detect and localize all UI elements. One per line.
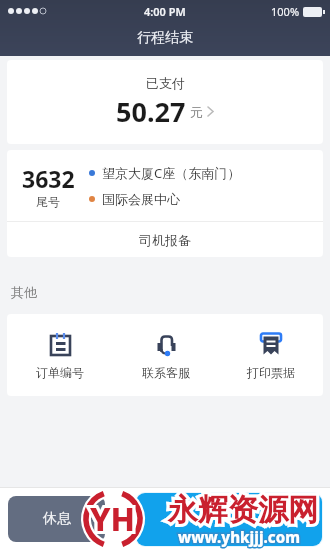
staticText: 其他 xyxy=(11,284,37,300)
staticText: 100% xyxy=(271,4,300,19)
staticText: 休息 xyxy=(43,510,71,528)
staticText: YH xyxy=(90,497,136,541)
button[interactable]: 已支付 xyxy=(7,60,323,144)
staticText: 联系客服 xyxy=(142,365,190,380)
button[interactable]: 休息 xyxy=(8,496,105,542)
staticText: 永辉资源网 xyxy=(168,491,318,529)
staticText: 国际会展中心 xyxy=(102,191,180,207)
staticText: 4:00 PM xyxy=(144,4,186,19)
staticText: 订单编号 xyxy=(36,365,84,380)
button[interactable]: 订单编号 xyxy=(7,314,113,396)
staticText: 行程结束 xyxy=(137,29,193,47)
button[interactable]: 打印票据 xyxy=(218,314,323,396)
staticText: www.yhkjjj.com xyxy=(178,527,300,547)
staticText: 司机报备 xyxy=(139,232,191,248)
staticText: 元 xyxy=(190,104,203,120)
staticText: 尾号 xyxy=(36,194,60,209)
staticText: 已支付 xyxy=(146,75,185,91)
staticText: YH xyxy=(90,497,136,541)
staticText: 50.27 xyxy=(116,93,186,130)
staticText: 打印票据 xyxy=(247,365,295,380)
staticText: 永辉资源网 xyxy=(168,491,318,529)
staticText: www.yhkjjj.com xyxy=(178,527,300,547)
button[interactable]: 司机报备 xyxy=(7,222,323,257)
button[interactable]: 联系客服 xyxy=(113,314,218,396)
staticText: 望京大厦C座（东南门） xyxy=(102,164,241,182)
staticText: 3632 xyxy=(22,163,75,194)
